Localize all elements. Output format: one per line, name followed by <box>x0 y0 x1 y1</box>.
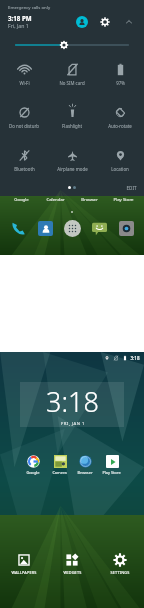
staticText: Play Store <box>102 470 121 475</box>
button[interactable]: Do not disturb <box>0 103 48 131</box>
staticText: Camera <box>52 470 67 475</box>
button[interactable]: Brightness <box>0 38 144 52</box>
button[interactable]: WALLPAPERS <box>0 553 48 575</box>
button[interactable]: Phone <box>9 219 28 238</box>
staticText: 97% <box>116 80 125 86</box>
staticText: FRI, JAN 1 <box>61 421 85 427</box>
button[interactable]: Contacts <box>36 219 55 238</box>
button[interactable]: Google <box>24 452 42 477</box>
staticText: 3:18 PM <box>8 14 32 22</box>
staticText: Bluetooth <box>14 166 35 172</box>
staticText: Auto-rotate <box>108 123 132 129</box>
staticText: Do not disturb <box>9 123 39 129</box>
button[interactable]: Bluetooth <box>0 146 48 174</box>
button[interactable]: Camera <box>50 452 69 477</box>
staticText: Airplane mode <box>57 166 88 172</box>
staticText: Location <box>111 166 129 172</box>
button[interactable]: Browser <box>75 452 95 477</box>
button[interactable]: Location <box>96 146 144 174</box>
button[interactable]: SETTINGS <box>96 553 144 575</box>
button[interactable]: Auto-rotate <box>96 103 144 131</box>
staticText: Google <box>14 196 29 202</box>
staticText: Play Store <box>113 196 134 202</box>
staticText: EDIT <box>126 185 137 191</box>
staticText: Calendar <box>46 196 65 202</box>
button[interactable]: Google <box>4 196 38 202</box>
button[interactable]: User <box>76 16 88 28</box>
button[interactable]: Flashlight <box>48 103 96 131</box>
button[interactable]: Airplane mode <box>48 146 96 174</box>
button[interactable]: EDIT <box>126 185 137 191</box>
staticText: 3:18 <box>130 355 140 361</box>
button[interactable]: 3:18 <box>20 382 124 427</box>
button[interactable]: Camera <box>117 219 136 238</box>
button[interactable]: Collapse <box>122 15 136 29</box>
button[interactable]: Wi-Fi <box>0 60 48 88</box>
staticText: Fri, Jan 1 <box>8 22 29 29</box>
button[interactable]: 97% <box>96 60 144 88</box>
button[interactable]: Calendar <box>38 196 72 202</box>
staticText: Google <box>26 470 40 475</box>
staticText: Browser <box>81 196 98 202</box>
staticText: Emergency calls only <box>8 4 51 10</box>
staticText: WIDGETS <box>63 570 82 575</box>
staticText: Flashlight <box>62 123 82 129</box>
staticText: Browser <box>77 470 93 475</box>
button[interactable]: Apps <box>63 219 82 238</box>
button[interactable]: Play Store <box>106 196 140 202</box>
button[interactable]: Settings <box>98 15 112 29</box>
staticText: No SIM card <box>59 80 85 86</box>
staticText: 3:18 <box>46 383 99 420</box>
button[interactable]: No SIM card <box>48 60 96 88</box>
button[interactable]: Browser <box>72 196 106 202</box>
button[interactable]: Play Store <box>100 452 123 477</box>
button[interactable]: WIDGETS <box>48 553 96 575</box>
staticText: Wi-Fi <box>19 80 30 86</box>
button[interactable]: Messaging <box>90 219 109 238</box>
staticText: WALLPAPERS <box>11 570 37 575</box>
staticText: SETTINGS <box>110 570 130 575</box>
